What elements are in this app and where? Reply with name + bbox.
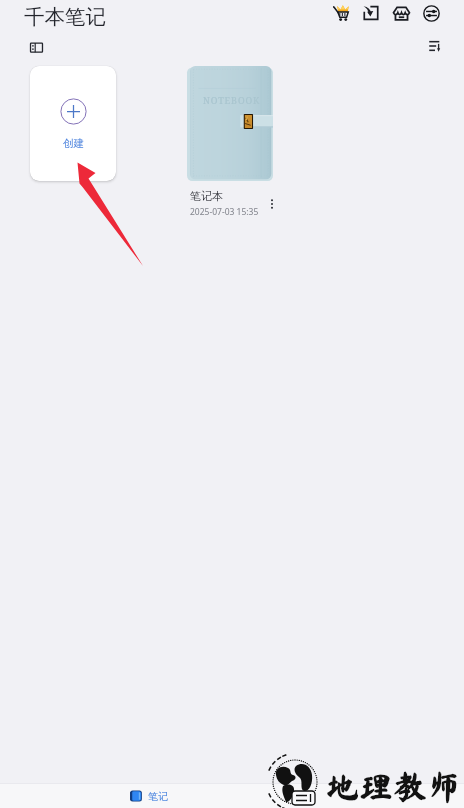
staticText: NOTEBOOK xyxy=(203,94,261,106)
button[interactable]: Shop xyxy=(386,0,416,28)
button[interactable]: Change layout xyxy=(25,36,47,58)
button[interactable]: Settings xyxy=(416,0,446,28)
staticText: 笔记本 xyxy=(190,189,223,203)
button[interactable]: Sort xyxy=(424,35,446,57)
staticText: 地理教师 xyxy=(325,769,461,803)
button[interactable]: VIP store xyxy=(326,0,356,28)
staticText: 千本笔记 xyxy=(24,4,106,30)
staticText: 创建 xyxy=(63,137,84,150)
staticText: 笔记 xyxy=(148,790,168,803)
button[interactable]: Import xyxy=(356,0,386,28)
button[interactable]: 创建 xyxy=(30,66,116,181)
staticText: 2025-07-03 15:35 xyxy=(190,206,259,218)
button[interactable]: 笔记 xyxy=(129,784,168,808)
button[interactable]: More options xyxy=(262,194,282,214)
